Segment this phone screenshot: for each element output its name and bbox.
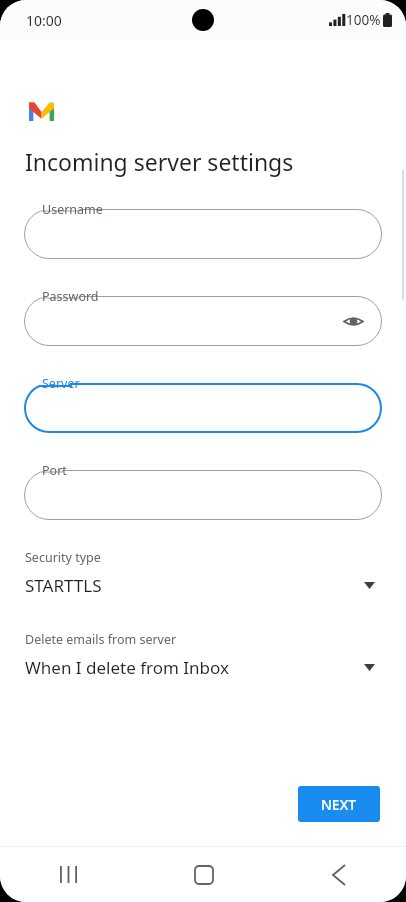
button[interactable]: Username bbox=[24, 201, 382, 259]
staticText: NEXT bbox=[321, 795, 357, 814]
staticText: Server bbox=[42, 375, 80, 392]
staticText: Username bbox=[42, 201, 103, 218]
staticText: 10:00 bbox=[26, 11, 62, 30]
staticText: Security type bbox=[25, 549, 101, 566]
button[interactable]: Show password bbox=[338, 306, 368, 336]
button[interactable]: Home bbox=[136, 847, 271, 902]
button[interactable]: Server bbox=[24, 375, 382, 433]
button[interactable]: Recents bbox=[0, 847, 136, 902]
button[interactable]: NEXT bbox=[298, 786, 380, 822]
staticText: When I delete from Inbox bbox=[25, 656, 364, 679]
staticText: Port bbox=[42, 462, 67, 479]
staticText: Delete emails from server bbox=[25, 631, 177, 648]
button[interactable]: Security type bbox=[0, 549, 406, 597]
button[interactable]: Back bbox=[271, 847, 406, 902]
staticText: Password bbox=[42, 288, 99, 305]
button[interactable]: Delete emails from server bbox=[0, 631, 406, 679]
button[interactable]: Password bbox=[24, 288, 382, 346]
staticText: STARTTLS bbox=[25, 574, 364, 597]
button[interactable]: Port bbox=[24, 462, 382, 520]
staticText: 100% bbox=[346, 11, 381, 29]
staticText: Incoming server settings bbox=[25, 146, 294, 177]
